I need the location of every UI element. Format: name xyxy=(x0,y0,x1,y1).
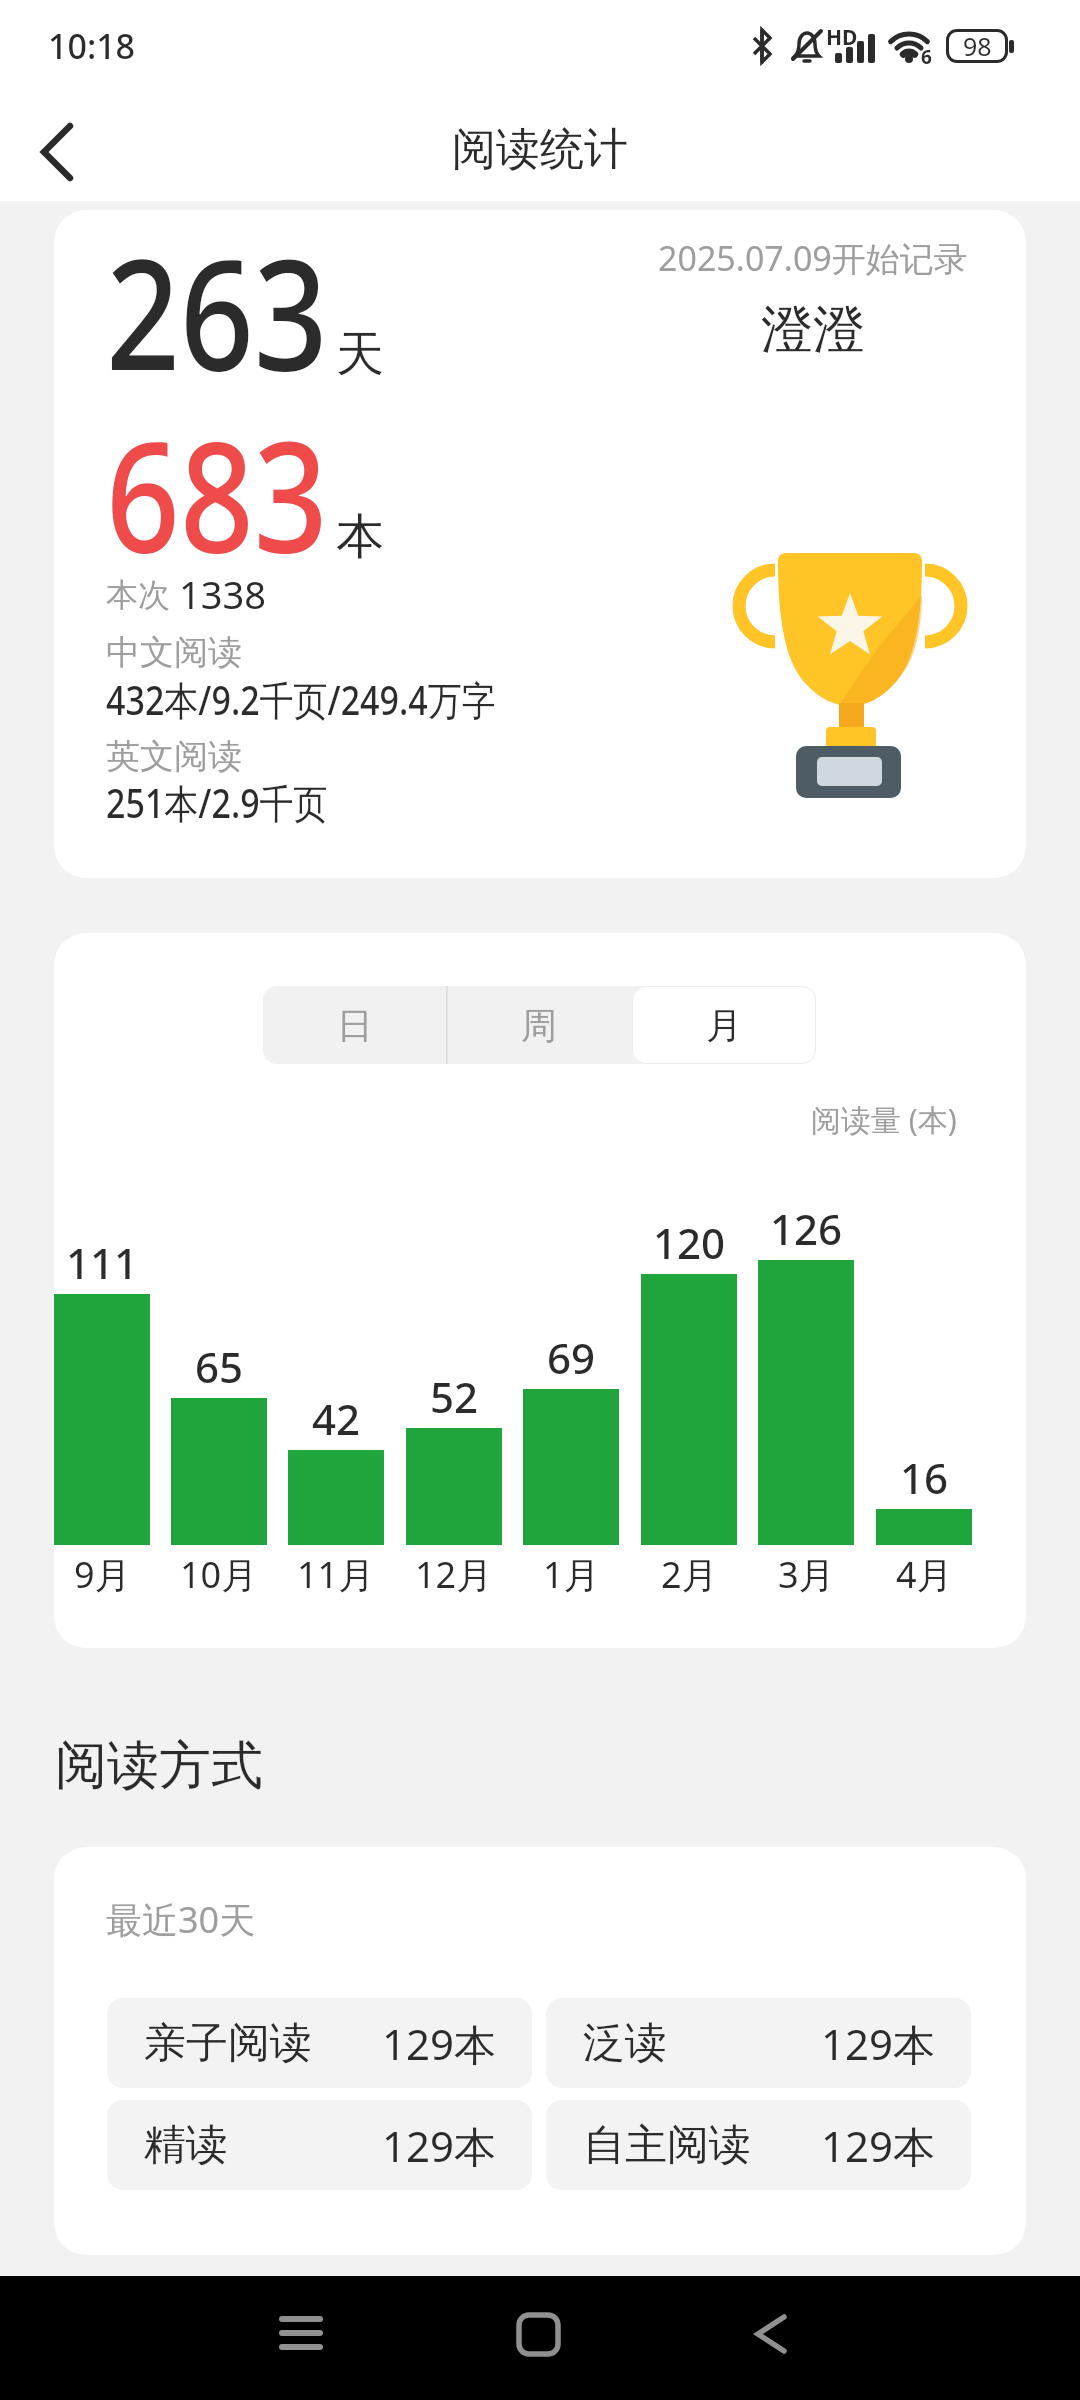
staticText: 683 xyxy=(106,390,328,597)
staticText: 2025.07.09开始记录 xyxy=(658,235,968,281)
staticText: 1月 xyxy=(543,1550,600,1599)
staticText: 最近30天 xyxy=(106,1895,256,1944)
button[interactable] xyxy=(736,2297,808,2369)
staticText: 42 xyxy=(312,1390,361,1447)
staticText: 精读 xyxy=(144,2119,228,2172)
staticText: 12月 xyxy=(415,1550,493,1599)
staticText: 中文阅读 xyxy=(106,631,242,674)
staticText: 自主阅读 xyxy=(583,2119,751,2172)
button[interactable]: 月 xyxy=(632,986,816,1064)
staticText: 69 xyxy=(547,1329,596,1386)
staticText: 129本 xyxy=(382,2015,497,2072)
staticText: 本 xyxy=(336,507,384,567)
staticText: 251本/2.9千页 xyxy=(106,775,328,830)
staticText: 阅读统计 xyxy=(452,122,628,177)
staticText: 10月 xyxy=(180,1550,258,1599)
staticText: 129本 xyxy=(382,2117,497,2174)
button[interactable]: 泛读 xyxy=(546,1998,971,2088)
button[interactable] xyxy=(265,2297,337,2369)
staticText: 432本/9.2千页/249.4万字 xyxy=(106,672,496,727)
staticText: 52 xyxy=(430,1368,479,1425)
button[interactable]: 日 xyxy=(263,986,447,1064)
staticText: 126 xyxy=(770,1200,843,1257)
button[interactable]: 亲子阅读 xyxy=(107,1998,532,2088)
staticText: 泛读 xyxy=(583,2017,667,2070)
staticText: 1338 xyxy=(179,568,266,620)
staticText: 98 xyxy=(963,29,992,63)
staticText: 天 xyxy=(336,324,384,384)
staticText: 英文阅读 xyxy=(106,735,242,778)
staticText: 3月 xyxy=(778,1550,835,1599)
staticText: 日 xyxy=(337,1003,373,1048)
staticText: 4月 xyxy=(896,1550,953,1599)
staticText: 澄澄 xyxy=(761,297,865,363)
staticText: HD xyxy=(826,23,858,52)
button[interactable] xyxy=(502,2297,574,2369)
staticText: 129本 xyxy=(821,2117,936,2174)
staticText: 6 xyxy=(921,44,932,70)
staticText: 65 xyxy=(195,1338,244,1395)
button[interactable]: 精读 xyxy=(107,2100,532,2190)
staticText: 阅读方式 xyxy=(55,1733,263,1799)
staticText: 111 xyxy=(66,1234,139,1291)
staticText: 月 xyxy=(706,1003,742,1048)
staticText: 亲子阅读 xyxy=(144,2017,312,2070)
staticText: 120 xyxy=(653,1214,726,1271)
staticText: 129本 xyxy=(821,2015,936,2072)
button[interactable]: 自主阅读 xyxy=(546,2100,971,2190)
staticText: 周 xyxy=(521,1003,557,1048)
staticText: 16 xyxy=(900,1449,949,1506)
staticText: 263 xyxy=(106,210,328,415)
staticText: 阅读量 (本) xyxy=(811,1099,957,1140)
button[interactable] xyxy=(22,116,94,188)
staticText: 9月 xyxy=(74,1550,131,1599)
staticText: 本次 xyxy=(106,572,179,616)
staticText: 2月 xyxy=(661,1550,718,1599)
button[interactable]: 周 xyxy=(447,986,631,1064)
staticText: 10:18 xyxy=(48,23,136,69)
staticText: 11月 xyxy=(297,1550,375,1599)
